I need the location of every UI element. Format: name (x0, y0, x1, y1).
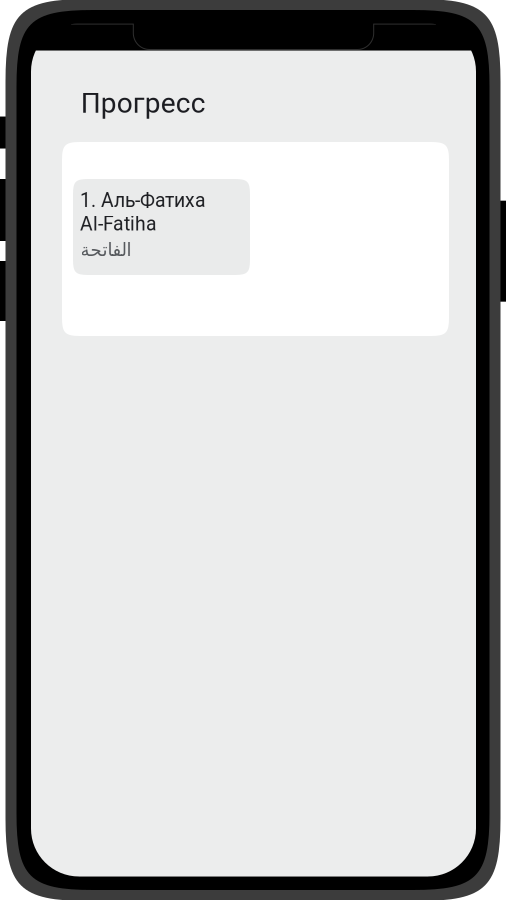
staticText: 1. Аль-Фатиха (80, 189, 206, 212)
staticText: الفاتحة (80, 239, 131, 260)
staticText: Al-Fatiha (80, 213, 157, 235)
button[interactable]: 1. Аль-Фатиха (73, 179, 250, 275)
staticText: Прогресс (81, 87, 206, 119)
